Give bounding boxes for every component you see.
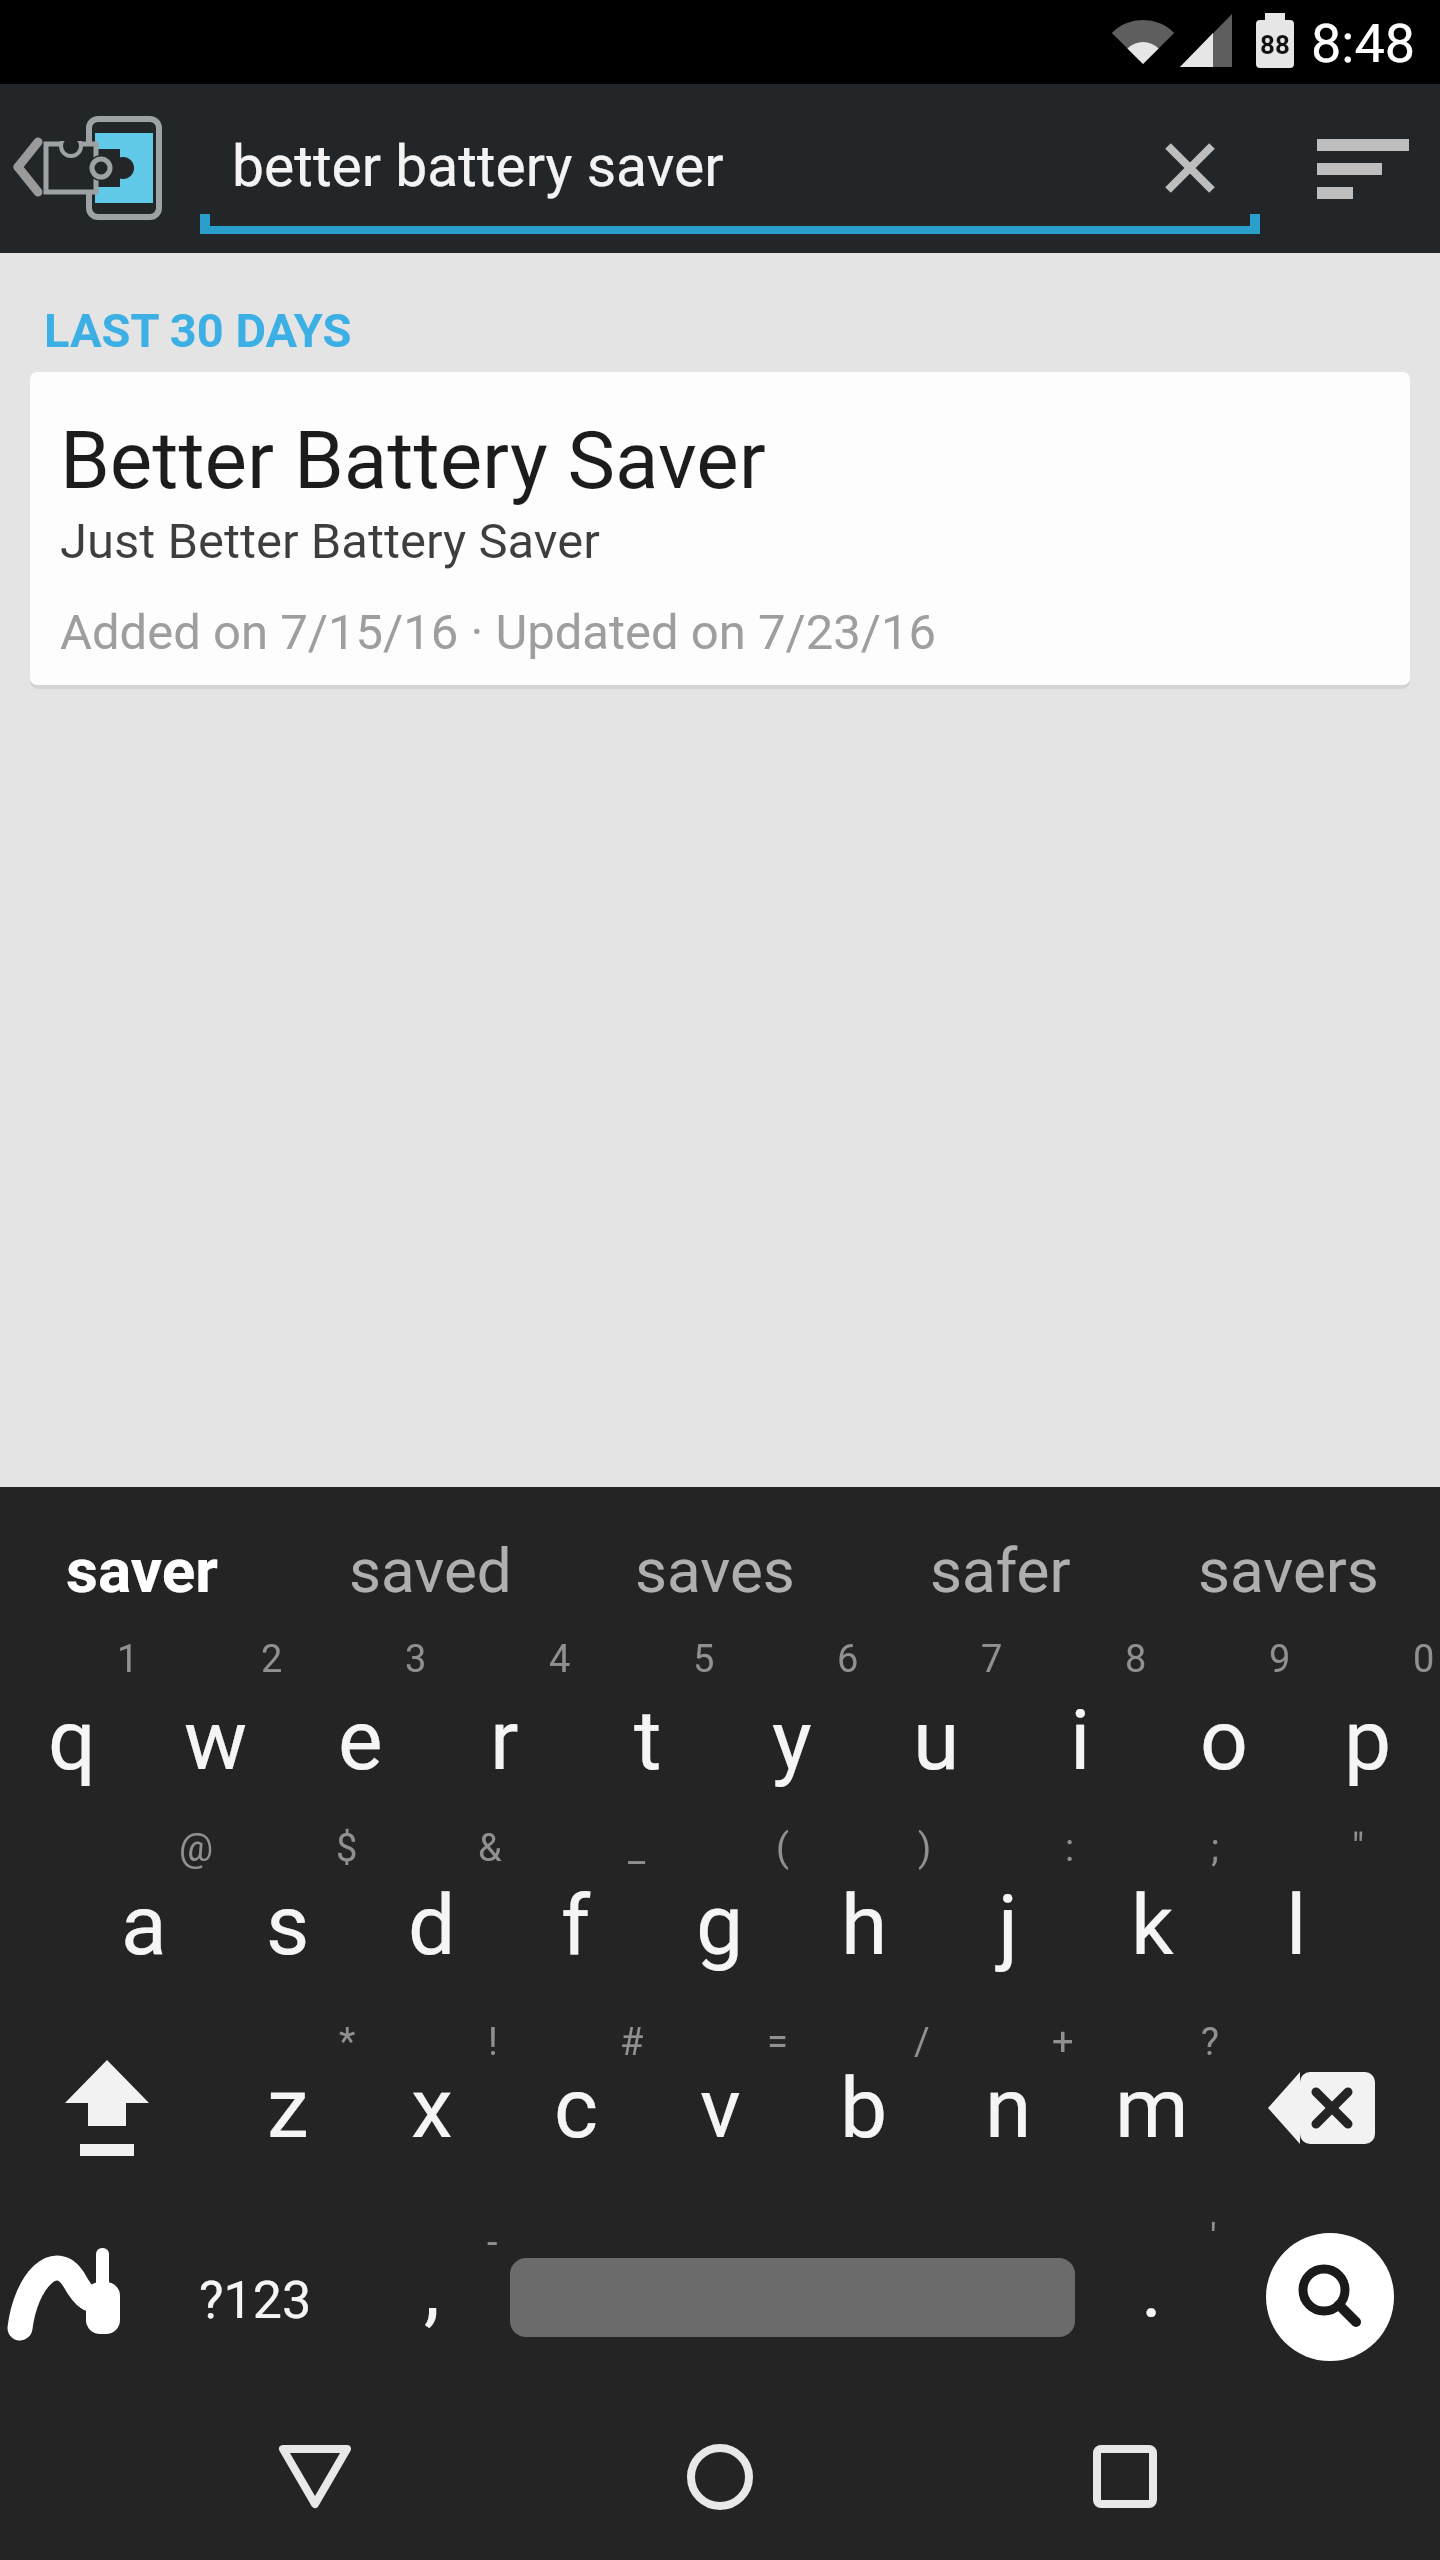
staticText: 9: [1269, 1637, 1291, 1682]
button[interactable]: a: [72, 1850, 216, 2000]
staticText: _: [628, 1826, 646, 1871]
button[interactable]: e: [288, 1665, 432, 1815]
button[interactable]: z: [216, 2033, 360, 2183]
staticText: -: [487, 2220, 498, 2265]
staticText: 3: [405, 1637, 427, 1682]
button[interactable]: [1258, 2040, 1398, 2180]
button[interactable]: j: [936, 1850, 1080, 2000]
button[interactable]: i: [1008, 1665, 1152, 1815]
staticText: j: [998, 1876, 1019, 1974]
button[interactable]: k: [1080, 1850, 1224, 2000]
staticText: .: [1141, 2243, 1163, 2337]
staticText: savers: [1198, 1534, 1379, 1607]
staticText: b: [840, 2059, 888, 2157]
button[interactable]: x: [360, 2033, 504, 2183]
staticText: s: [266, 1876, 310, 1974]
staticText: q: [48, 1691, 96, 1789]
button[interactable]: ,: [367, 2220, 497, 2360]
staticText: /: [914, 2020, 930, 2065]
staticText: p: [1344, 1691, 1392, 1789]
staticText: v: [700, 2059, 741, 2157]
button[interactable]: savers: [1148, 1510, 1428, 1630]
button[interactable]: m: [1080, 2033, 1224, 2183]
button[interactable]: saves: [575, 1510, 855, 1630]
staticText: t: [634, 1691, 662, 1789]
staticText: w: [184, 1691, 248, 1789]
staticText: 0: [1413, 1637, 1435, 1682]
button[interactable]: h: [792, 1850, 936, 2000]
button[interactable]: r: [432, 1665, 576, 1815]
staticText: 8:48: [1311, 12, 1416, 75]
staticText: n: [985, 2059, 1032, 2157]
staticText: =: [767, 2020, 788, 2065]
staticText: x: [411, 2059, 453, 2157]
button[interactable]: [1266, 2233, 1394, 2361]
button[interactable]: y: [720, 1665, 864, 1815]
button[interactable]: [30, 372, 1410, 685]
button[interactable]: q: [0, 1665, 144, 1815]
staticText: :: [1065, 1826, 1075, 1871]
button[interactable]: safer: [860, 1510, 1140, 1630]
staticText: !: [488, 2020, 498, 2065]
staticText: 2: [261, 1637, 283, 1682]
button[interactable]: c: [504, 2033, 648, 2183]
staticText: m: [1115, 2059, 1189, 2157]
staticText: 7: [981, 1637, 1003, 1682]
staticText: ": [1352, 1826, 1365, 1871]
button[interactable]: ?123: [145, 2230, 365, 2370]
button[interactable]: s: [216, 1850, 360, 2000]
button[interactable]: o: [1152, 1665, 1296, 1815]
staticText: z: [267, 2059, 309, 2157]
staticText: 4: [549, 1637, 571, 1682]
staticText: better battery saver: [232, 133, 724, 200]
staticText: o: [1200, 1691, 1248, 1789]
button[interactable]: saved: [290, 1510, 570, 1630]
button[interactable]: [0, 84, 185, 253]
button[interactable]: u: [864, 1665, 1008, 1815]
button[interactable]: t: [576, 1665, 720, 1815]
button[interactable]: saver: [2, 1510, 282, 1630]
button[interactable]: [1130, 104, 1254, 228]
button[interactable]: .: [1087, 2220, 1217, 2360]
staticText: 5: [693, 1637, 715, 1682]
button[interactable]: [10, 2230, 140, 2360]
button[interactable]: b: [792, 2033, 936, 2183]
button[interactable]: [1055, 2407, 1195, 2547]
staticText: 1: [117, 1637, 139, 1682]
staticText: ': [1210, 2216, 1217, 2261]
button[interactable]: v: [648, 2033, 792, 2183]
staticText: *: [339, 2020, 356, 2065]
staticText: ,: [424, 2243, 440, 2337]
staticText: 88: [1260, 30, 1290, 60]
button[interactable]: [650, 2407, 790, 2547]
button[interactable]: g: [648, 1850, 792, 2000]
button[interactable]: [510, 2258, 1075, 2337]
staticText: Better Battery Saver: [60, 414, 766, 508]
staticText: saver: [66, 1534, 218, 1607]
staticText: l: [1286, 1876, 1307, 1974]
staticText: #: [620, 2020, 644, 2065]
button[interactable]: [245, 2407, 385, 2547]
staticText: y: [772, 1691, 812, 1789]
staticText: f: [561, 1876, 591, 1974]
button[interactable]: p: [1296, 1665, 1440, 1815]
staticText: r: [490, 1691, 519, 1789]
staticText: i: [1070, 1691, 1091, 1789]
button[interactable]: n: [936, 2033, 1080, 2183]
staticText: k: [1131, 1876, 1174, 1974]
button[interactable]: [40, 2040, 180, 2180]
staticText: safer: [930, 1534, 1071, 1607]
button[interactable]: d: [360, 1850, 504, 2000]
staticText: &: [478, 1826, 502, 1871]
staticText: saves: [635, 1534, 795, 1607]
button[interactable]: f: [504, 1850, 648, 2000]
button[interactable]: w: [144, 1665, 288, 1815]
staticText: ?: [1201, 2020, 1219, 2065]
button[interactable]: [1290, 104, 1430, 228]
staticText: 6: [837, 1637, 859, 1682]
staticText: LAST 30 DAYS: [44, 303, 352, 358]
button[interactable]: l: [1224, 1850, 1368, 2000]
staticText: Added on 7/15/16 · Updated on 7/23/16: [60, 604, 937, 661]
staticText: Just Better Battery Saver: [60, 513, 600, 570]
staticText: ?123: [199, 2270, 312, 2331]
